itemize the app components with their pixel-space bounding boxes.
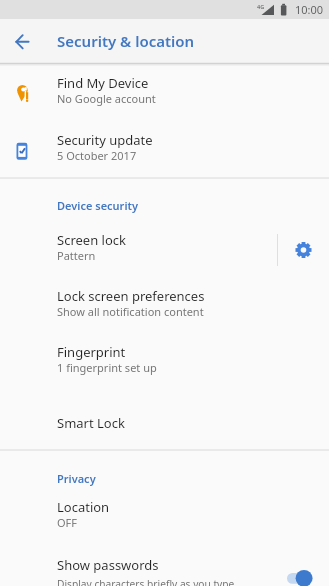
staticText: Device security (57, 198, 138, 213)
staticText: Lock screen preferences (57, 287, 205, 305)
staticText: Privacy (57, 471, 96, 486)
staticText: Display characters briefly as you type (57, 577, 235, 586)
button[interactable]: Security update (0, 121, 329, 178)
button[interactable] (278, 222, 329, 278)
button[interactable]: Lock screen preferences (0, 278, 329, 334)
staticText: Show all notification content (57, 304, 204, 319)
staticText: No Google account (57, 91, 156, 106)
staticText: 1 fingerprint set up (57, 360, 157, 375)
button[interactable]: Smart Lock (0, 396, 329, 453)
staticText: Find My Device (57, 74, 149, 92)
staticText: Security & location (57, 31, 195, 51)
button[interactable] (282, 564, 320, 586)
button[interactable]: Find My Device (0, 64, 329, 121)
staticText: 4G (257, 3, 265, 10)
staticText: 10:00 (295, 2, 324, 17)
staticText: OFF (57, 515, 78, 530)
button[interactable]: Location (0, 489, 329, 545)
staticText: Pattern (57, 248, 96, 263)
staticText: Screen lock (57, 231, 126, 249)
staticText: Security update (57, 131, 153, 149)
button[interactable] (2, 21, 42, 61)
button[interactable]: Fingerprint (0, 334, 329, 390)
staticText: Location (57, 498, 110, 516)
button[interactable]: Screen lock (0, 222, 329, 278)
staticText: 5 October 2017 (57, 148, 137, 163)
button[interactable]: Show passwords (0, 546, 329, 586)
staticText: Fingerprint (57, 343, 126, 361)
staticText: Smart Lock (57, 414, 125, 432)
staticText: Show passwords (57, 556, 159, 574)
